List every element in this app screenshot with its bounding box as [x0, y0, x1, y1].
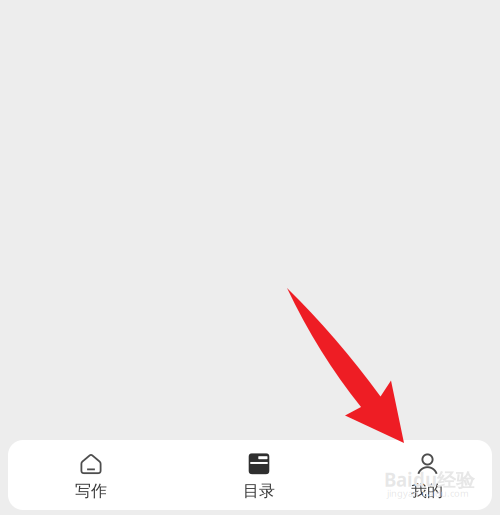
staticText: Baidu经验 — [384, 467, 475, 492]
staticText: 写作 — [75, 481, 107, 501]
button[interactable]: 写作 — [35, 440, 147, 510]
button[interactable]: 我的 — [371, 440, 483, 510]
button[interactable]: 目录 — [203, 440, 315, 510]
staticText: 我的 — [411, 481, 443, 501]
staticText: 目录 — [243, 481, 275, 501]
staticText: jingyan.baidu.com — [387, 487, 469, 499]
